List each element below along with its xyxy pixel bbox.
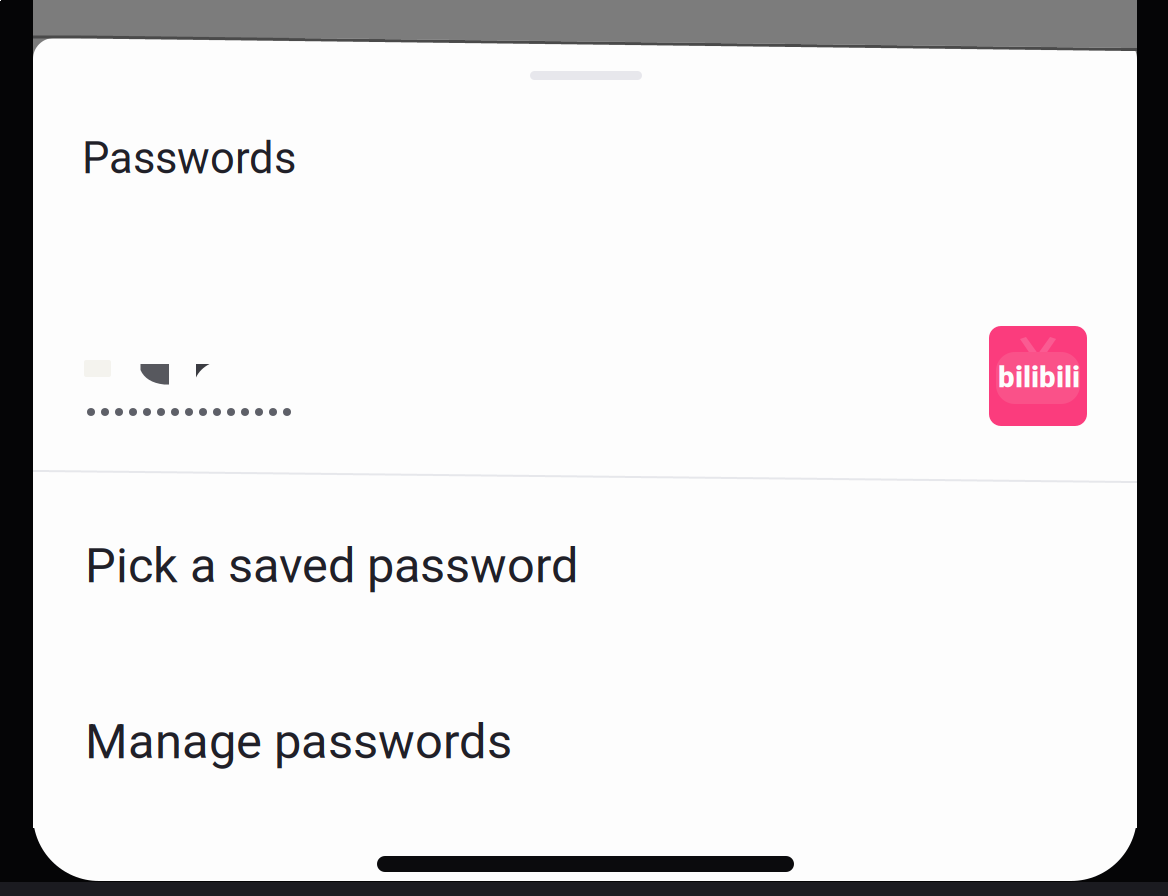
button[interactable]: Manage passwords [33,652,1137,828]
button[interactable]: Pick a saved password [33,476,1137,652]
staticText: Pick a saved password [85,537,578,594]
staticText: Manage passwords [85,713,512,770]
button[interactable]: Saved password for bilibili [33,316,1137,506]
staticText: Passwords [82,133,296,184]
staticText: bilibili [998,360,1080,394]
